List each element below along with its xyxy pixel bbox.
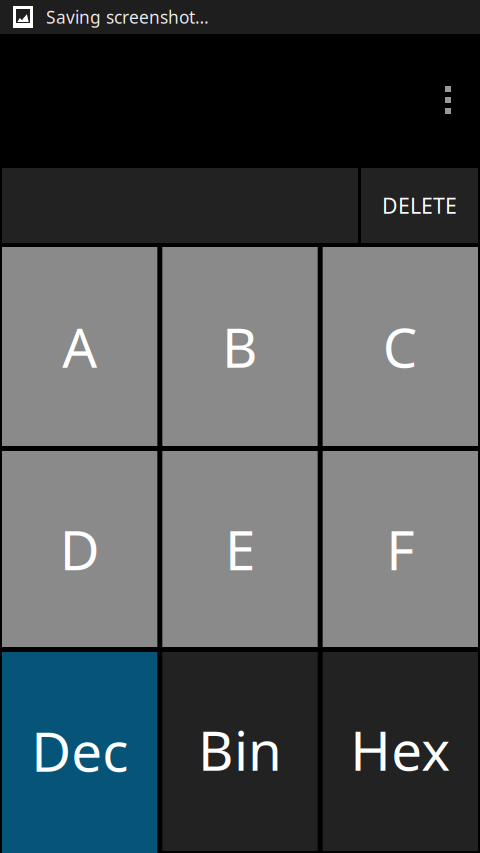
- button[interactable]: E: [162, 451, 318, 647]
- button[interactable]: F: [323, 451, 478, 647]
- button[interactable]: Hex: [323, 652, 478, 853]
- staticText: E: [225, 513, 255, 585]
- staticText: D: [60, 513, 100, 585]
- staticText: B: [222, 310, 258, 383]
- staticText: DELETE: [382, 191, 457, 220]
- button[interactable]: DELETE: [361, 168, 478, 243]
- button[interactable]: C: [323, 247, 478, 446]
- button[interactable]: More options: [424, 69, 472, 131]
- button[interactable]: Dec: [2, 652, 157, 853]
- staticText: C: [383, 310, 418, 383]
- staticText: Dec: [31, 714, 128, 787]
- staticText: Hex: [350, 713, 450, 786]
- button[interactable]: D: [2, 451, 157, 647]
- button[interactable]: Bin: [162, 652, 318, 853]
- button[interactable]: B: [162, 247, 318, 446]
- staticText: F: [386, 513, 414, 585]
- button[interactable]: A: [2, 247, 157, 446]
- staticText: Bin: [198, 713, 282, 786]
- staticText: A: [62, 310, 97, 383]
- staticText: Saving screenshot…: [46, 5, 209, 28]
